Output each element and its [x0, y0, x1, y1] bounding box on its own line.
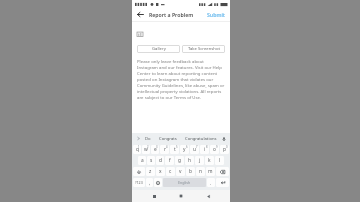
staticText: w: [144, 146, 148, 153]
staticText: s: [150, 157, 153, 164]
button[interactable]: j: [195, 156, 204, 165]
staticText: k: [208, 157, 211, 164]
button[interactable]: p: [220, 145, 229, 154]
button[interactable]: o: [210, 145, 219, 154]
staticText: ,: [149, 180, 151, 186]
staticText: e: [154, 146, 157, 153]
staticText: x: [159, 168, 162, 175]
button[interactable]: w: [142, 145, 150, 154]
staticText: d: [159, 157, 162, 164]
button[interactable]: x: [156, 167, 165, 176]
button[interactable]: v: [176, 167, 185, 176]
button[interactable]: t: [170, 145, 179, 154]
button[interactable]: e: [151, 145, 159, 154]
staticText: Congratulations: [185, 136, 217, 142]
button[interactable]: u: [190, 145, 199, 154]
staticText: Take Screenshot: [188, 46, 220, 52]
button[interactable]: Recents: [149, 191, 159, 201]
staticText: 6: [186, 145, 188, 149]
staticText: b: [189, 168, 192, 175]
button[interactable]: Gallery: [137, 45, 180, 53]
button[interactable]: s: [147, 156, 155, 165]
staticText: 5: [176, 145, 178, 149]
button[interactable]: m: [206, 167, 215, 176]
button[interactable]: f: [165, 156, 174, 165]
staticText: q: [136, 146, 139, 153]
staticText: r: [164, 146, 166, 153]
staticText: g: [178, 157, 181, 164]
staticText: o: [213, 146, 216, 153]
staticText: Please only leave feedback about Instagr…: [137, 58, 225, 100]
button[interactable]: l: [215, 156, 224, 165]
staticText: Do: [145, 136, 151, 142]
staticText: 9: [216, 145, 218, 149]
staticText: 0: [226, 145, 228, 149]
staticText: Gallery: [152, 46, 166, 52]
staticText: 4: [166, 145, 168, 149]
staticText: .: [210, 180, 212, 186]
button[interactable]: ?123: [133, 178, 145, 187]
button[interactable]: y: [180, 145, 189, 154]
button[interactable]: Emoji: [154, 178, 162, 187]
staticText: c: [169, 168, 172, 175]
button[interactable]: Period: [207, 178, 215, 187]
button[interactable]: Comma: [146, 178, 153, 187]
button[interactable]: Expand suggestions: [135, 135, 142, 142]
button[interactable]: h: [185, 156, 194, 165]
button[interactable]: n: [196, 167, 205, 176]
button[interactable]: k: [205, 156, 214, 165]
button[interactable]: Submit: [206, 9, 226, 20]
staticText: 3: [156, 145, 158, 149]
button[interactable]: Backspace: [216, 167, 229, 176]
staticText: 7: [196, 145, 198, 149]
staticText: Congrats: [159, 136, 177, 142]
staticText: a: [141, 157, 144, 164]
staticText: v: [179, 168, 182, 175]
button[interactable]: d: [156, 156, 164, 165]
button[interactable]: g: [175, 156, 184, 165]
staticText: ?123: [135, 180, 143, 185]
staticText: t: [174, 146, 176, 153]
button[interactable]: r: [160, 145, 169, 154]
staticText: 1: [138, 145, 140, 149]
button[interactable]: i: [200, 145, 209, 154]
button[interactable]: Do: [144, 134, 152, 144]
button[interactable]: a: [138, 156, 146, 165]
staticText: i: [204, 146, 206, 153]
button[interactable]: b: [186, 167, 195, 176]
button[interactable]: Shift: [133, 167, 145, 176]
staticText: y: [183, 146, 186, 153]
button[interactable]: Back: [136, 10, 145, 19]
button[interactable]: q: [133, 145, 141, 154]
button[interactable]: Voice input: [220, 135, 227, 142]
staticText: Report a Problem: [149, 11, 194, 18]
staticText: l: [219, 157, 221, 164]
button[interactable]: Home: [176, 191, 186, 201]
button[interactable]: Take Screenshot: [182, 45, 225, 53]
staticText: Submit: [207, 11, 225, 18]
staticText: 2: [147, 145, 149, 149]
button[interactable]: z: [146, 167, 155, 176]
staticText: f: [169, 157, 171, 164]
staticText: j: [199, 157, 201, 164]
button[interactable]: Congrats: [158, 134, 178, 144]
staticText: p: [223, 146, 226, 153]
button[interactable]: Congratulations: [184, 134, 218, 144]
staticText: 8: [206, 145, 208, 149]
button[interactable]: c: [166, 167, 175, 176]
staticText: u: [193, 146, 196, 153]
staticText: n: [199, 168, 202, 175]
staticText: h: [188, 157, 191, 164]
button[interactable]: Space: [163, 178, 206, 187]
staticText: m: [208, 168, 213, 175]
button[interactable]: Back: [203, 191, 213, 201]
staticText: English: [178, 180, 191, 185]
staticText: z: [149, 168, 152, 175]
button[interactable]: Enter: [216, 178, 229, 187]
